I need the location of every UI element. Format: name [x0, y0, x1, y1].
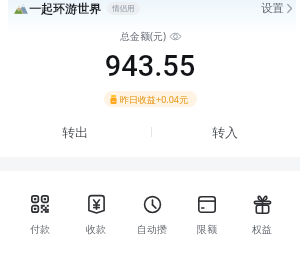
- staticText: 转入: [212, 124, 238, 140]
- button[interactable]: 情侣用: [107, 2, 140, 15]
- button[interactable]: 收款: [68, 192, 124, 238]
- button[interactable]: 转出: [0, 120, 150, 144]
- staticText: 权益: [252, 223, 272, 236]
- staticText: 限额: [197, 223, 217, 236]
- staticText: 情侣用: [112, 4, 135, 13]
- button[interactable]: 昨日收益+0.04元: [104, 91, 197, 107]
- staticText: 收款: [86, 223, 106, 236]
- button[interactable]: 付款: [12, 192, 68, 238]
- staticText: 总金额(元): [120, 29, 166, 43]
- button[interactable]: Toggle balance visibility: [170, 32, 181, 41]
- staticText: 自动攒: [137, 223, 167, 236]
- button[interactable]: 设置: [261, 0, 300, 16]
- staticText: 昨日收益+0.04元: [120, 93, 189, 105]
- button[interactable]: 权益: [234, 192, 289, 238]
- staticText: 一起环游世界: [29, 1, 101, 16]
- staticText: 设置: [261, 1, 284, 15]
- staticText: 转出: [62, 124, 88, 140]
- button[interactable]: 转入: [150, 120, 300, 144]
- button[interactable]: 自动攒: [124, 192, 179, 238]
- staticText: 付款: [30, 223, 50, 236]
- button[interactable]: 限额: [179, 192, 234, 238]
- staticText: 943.55: [0, 49, 300, 83]
